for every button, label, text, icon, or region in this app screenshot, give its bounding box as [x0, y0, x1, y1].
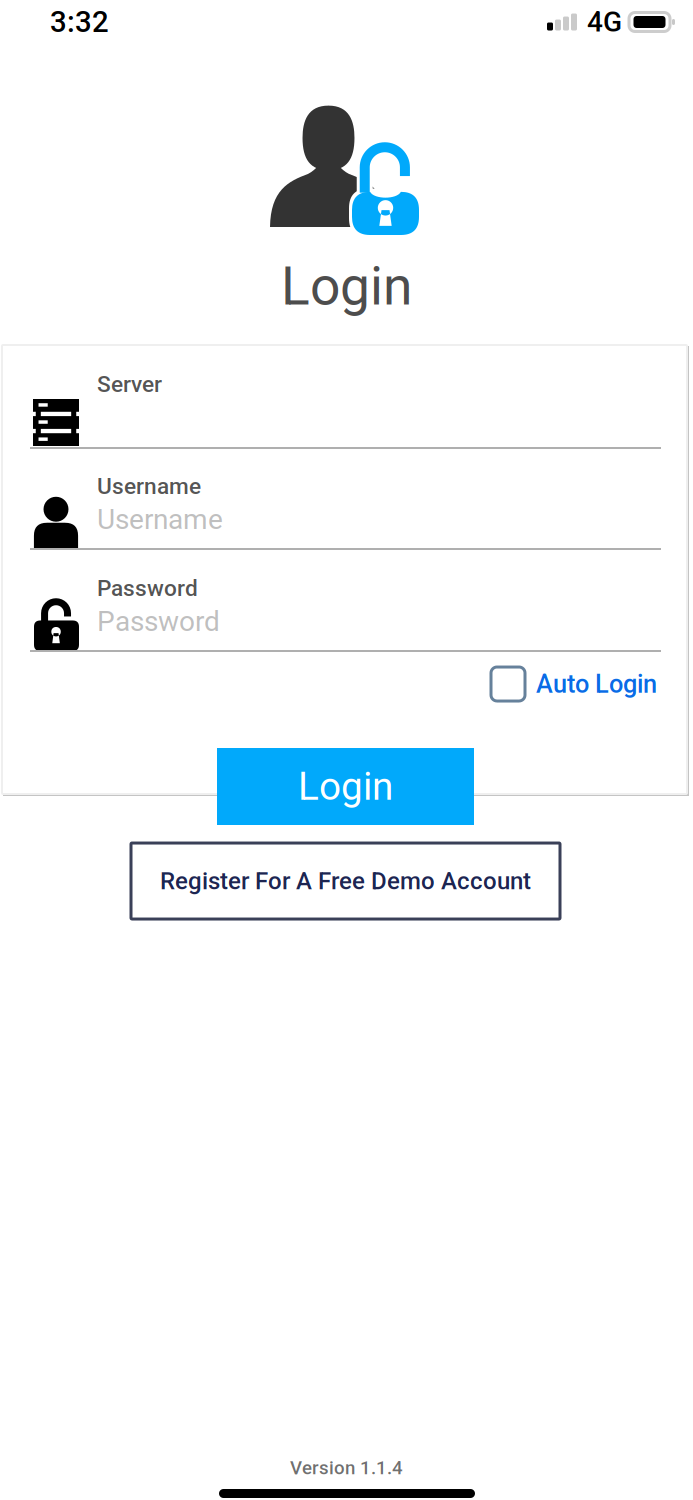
staticText: Username	[97, 473, 201, 500]
staticText: Login	[298, 764, 393, 809]
staticText: Login	[281, 255, 412, 317]
staticText: 3:32	[50, 5, 109, 39]
staticText: Server	[97, 371, 162, 398]
button[interactable]: Login	[217, 748, 474, 825]
staticText: Password	[97, 605, 220, 638]
staticText: 4G	[587, 6, 622, 38]
staticText: Register For A Free Demo Account	[160, 867, 531, 895]
staticText: Password	[97, 575, 198, 602]
button[interactable]: Register For A Free Demo Account	[131, 843, 560, 919]
staticText: Username	[97, 503, 223, 536]
button[interactable]: Auto Login	[491, 667, 657, 701]
staticText: Version 1.1.4	[290, 1457, 403, 1479]
staticText: Auto Login	[536, 669, 657, 699]
